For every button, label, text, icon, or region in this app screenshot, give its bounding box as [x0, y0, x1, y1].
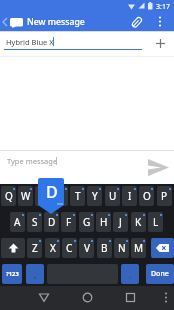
button[interactable]: ,: [26, 264, 44, 284]
button[interactable]: [1, 238, 25, 258]
staticText: L: [153, 215, 159, 229]
staticText: H: [100, 215, 108, 229]
staticText: 3:17: [156, 2, 170, 12]
staticText: New message: [27, 16, 85, 28]
staticText: O: [143, 189, 151, 203]
button[interactable]: R: [53, 186, 68, 206]
staticText: X: [50, 241, 56, 255]
button[interactable]: E: [35, 186, 50, 206]
staticText: I: [128, 189, 132, 203]
button[interactable]: D: [44, 212, 59, 232]
staticText: C: [66, 241, 73, 255]
staticText: S: [32, 215, 38, 229]
staticText: F: [66, 215, 72, 229]
staticText: V: [84, 241, 90, 255]
button[interactable]: X: [45, 238, 60, 258]
button[interactable]: U: [105, 186, 120, 206]
button[interactable]: C: [62, 238, 77, 258]
button[interactable]: K: [131, 212, 146, 232]
staticText: B: [101, 241, 108, 255]
button[interactable]: N: [114, 238, 129, 258]
button[interactable]: [164, 292, 168, 303]
staticText: Z: [32, 241, 38, 255]
staticText: Type message: [7, 156, 58, 166]
button[interactable]: [130, 16, 143, 29]
button[interactable]: Y: [87, 186, 102, 206]
button[interactable]: P: [157, 186, 172, 206]
staticText: D: [46, 181, 58, 203]
staticText: A: [14, 215, 21, 229]
button[interactable]: V: [79, 238, 94, 258]
button[interactable]: Done: [146, 264, 174, 284]
button[interactable]: A: [10, 212, 25, 232]
staticText: G: [83, 215, 91, 229]
staticText: M: [134, 241, 144, 255]
staticText: U: [109, 189, 117, 203]
staticText: ?123: [6, 270, 19, 278]
button[interactable]: W: [18, 186, 33, 206]
button[interactable]: [125, 292, 136, 303]
button[interactable]: Q: [1, 186, 16, 206]
staticText: ,: [34, 269, 37, 280]
button[interactable]: [148, 159, 169, 176]
button[interactable]: [158, 16, 162, 27]
button[interactable]: I: [122, 186, 137, 206]
button[interactable]: [82, 292, 93, 303]
button[interactable]: ?123: [2, 264, 22, 284]
staticText: P: [161, 189, 168, 203]
button[interactable]: O: [139, 186, 154, 206]
button[interactable]: .: [121, 264, 139, 284]
staticText: Done: [151, 269, 169, 279]
button[interactable]: F: [61, 212, 76, 232]
button[interactable]: Z: [27, 238, 42, 258]
button[interactable]: J: [113, 212, 128, 232]
button[interactable]: S: [27, 212, 42, 232]
staticText: Y: [92, 189, 98, 203]
button[interactable]: G: [79, 212, 94, 232]
staticText: Hybrid Blue X: [6, 37, 54, 47]
button[interactable]: [151, 238, 174, 258]
staticText: D: [48, 215, 56, 229]
staticText: W: [21, 189, 31, 203]
staticText: T: [75, 189, 81, 203]
button[interactable]: [2, 17, 8, 27]
staticText: N: [118, 241, 126, 255]
staticText: K: [135, 215, 142, 229]
button[interactable]: H: [96, 212, 111, 232]
staticText: J: [119, 215, 122, 229]
button[interactable]: B: [97, 238, 112, 258]
staticText: .: [129, 269, 132, 280]
button[interactable]: T: [70, 186, 85, 206]
staticText: Q: [5, 189, 13, 203]
button[interactable]: [155, 38, 166, 49]
button[interactable]: L: [148, 212, 163, 232]
button[interactable]: M: [131, 238, 146, 258]
button[interactable]: [38, 292, 50, 303]
button[interactable]: Type message: [0, 151, 174, 184]
